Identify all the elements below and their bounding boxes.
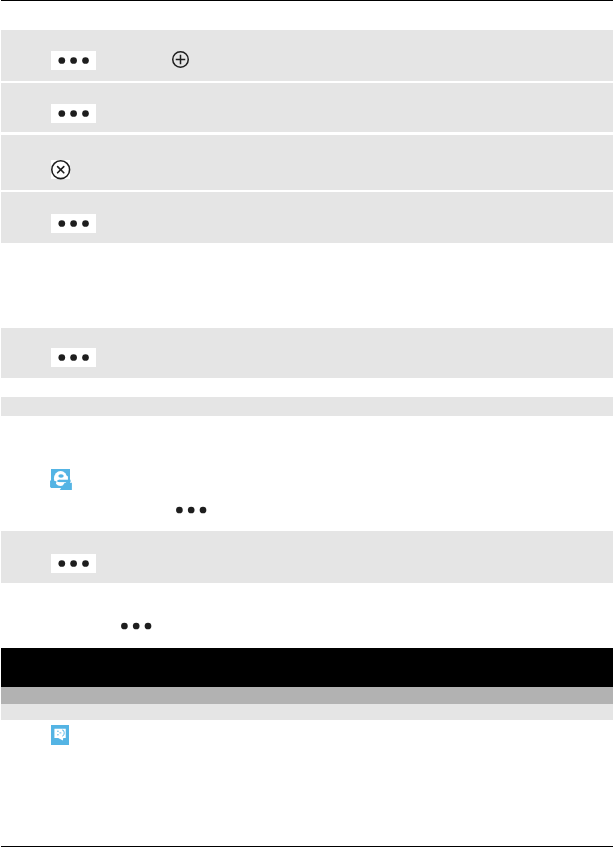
- button[interactable]: More options: [176, 502, 204, 518]
- button[interactable]: Row 4: [1, 192, 613, 243]
- button[interactable]: More options: [51, 214, 96, 233]
- button[interactable]: More options: [51, 51, 96, 70]
- button[interactable]: Add: [172, 51, 189, 68]
- button[interactable]: Row 5: [1, 328, 613, 378]
- button[interactable]: More options: [51, 348, 96, 367]
- button[interactable]: Row 2: [1, 83, 613, 132]
- button[interactable]: Messaging: [51, 725, 69, 745]
- button[interactable]: Row 1: [1, 30, 613, 81]
- button[interactable]: Row 7: [1, 531, 613, 583]
- button[interactable]: More options: [51, 104, 96, 123]
- button[interactable]: Row 3: [1, 135, 613, 190]
- button[interactable]: Close: [51, 160, 70, 179]
- button[interactable]: More options: [51, 554, 96, 573]
- button[interactable]: Internet Explorer: [51, 469, 70, 488]
- button[interactable]: More options: [121, 618, 149, 634]
